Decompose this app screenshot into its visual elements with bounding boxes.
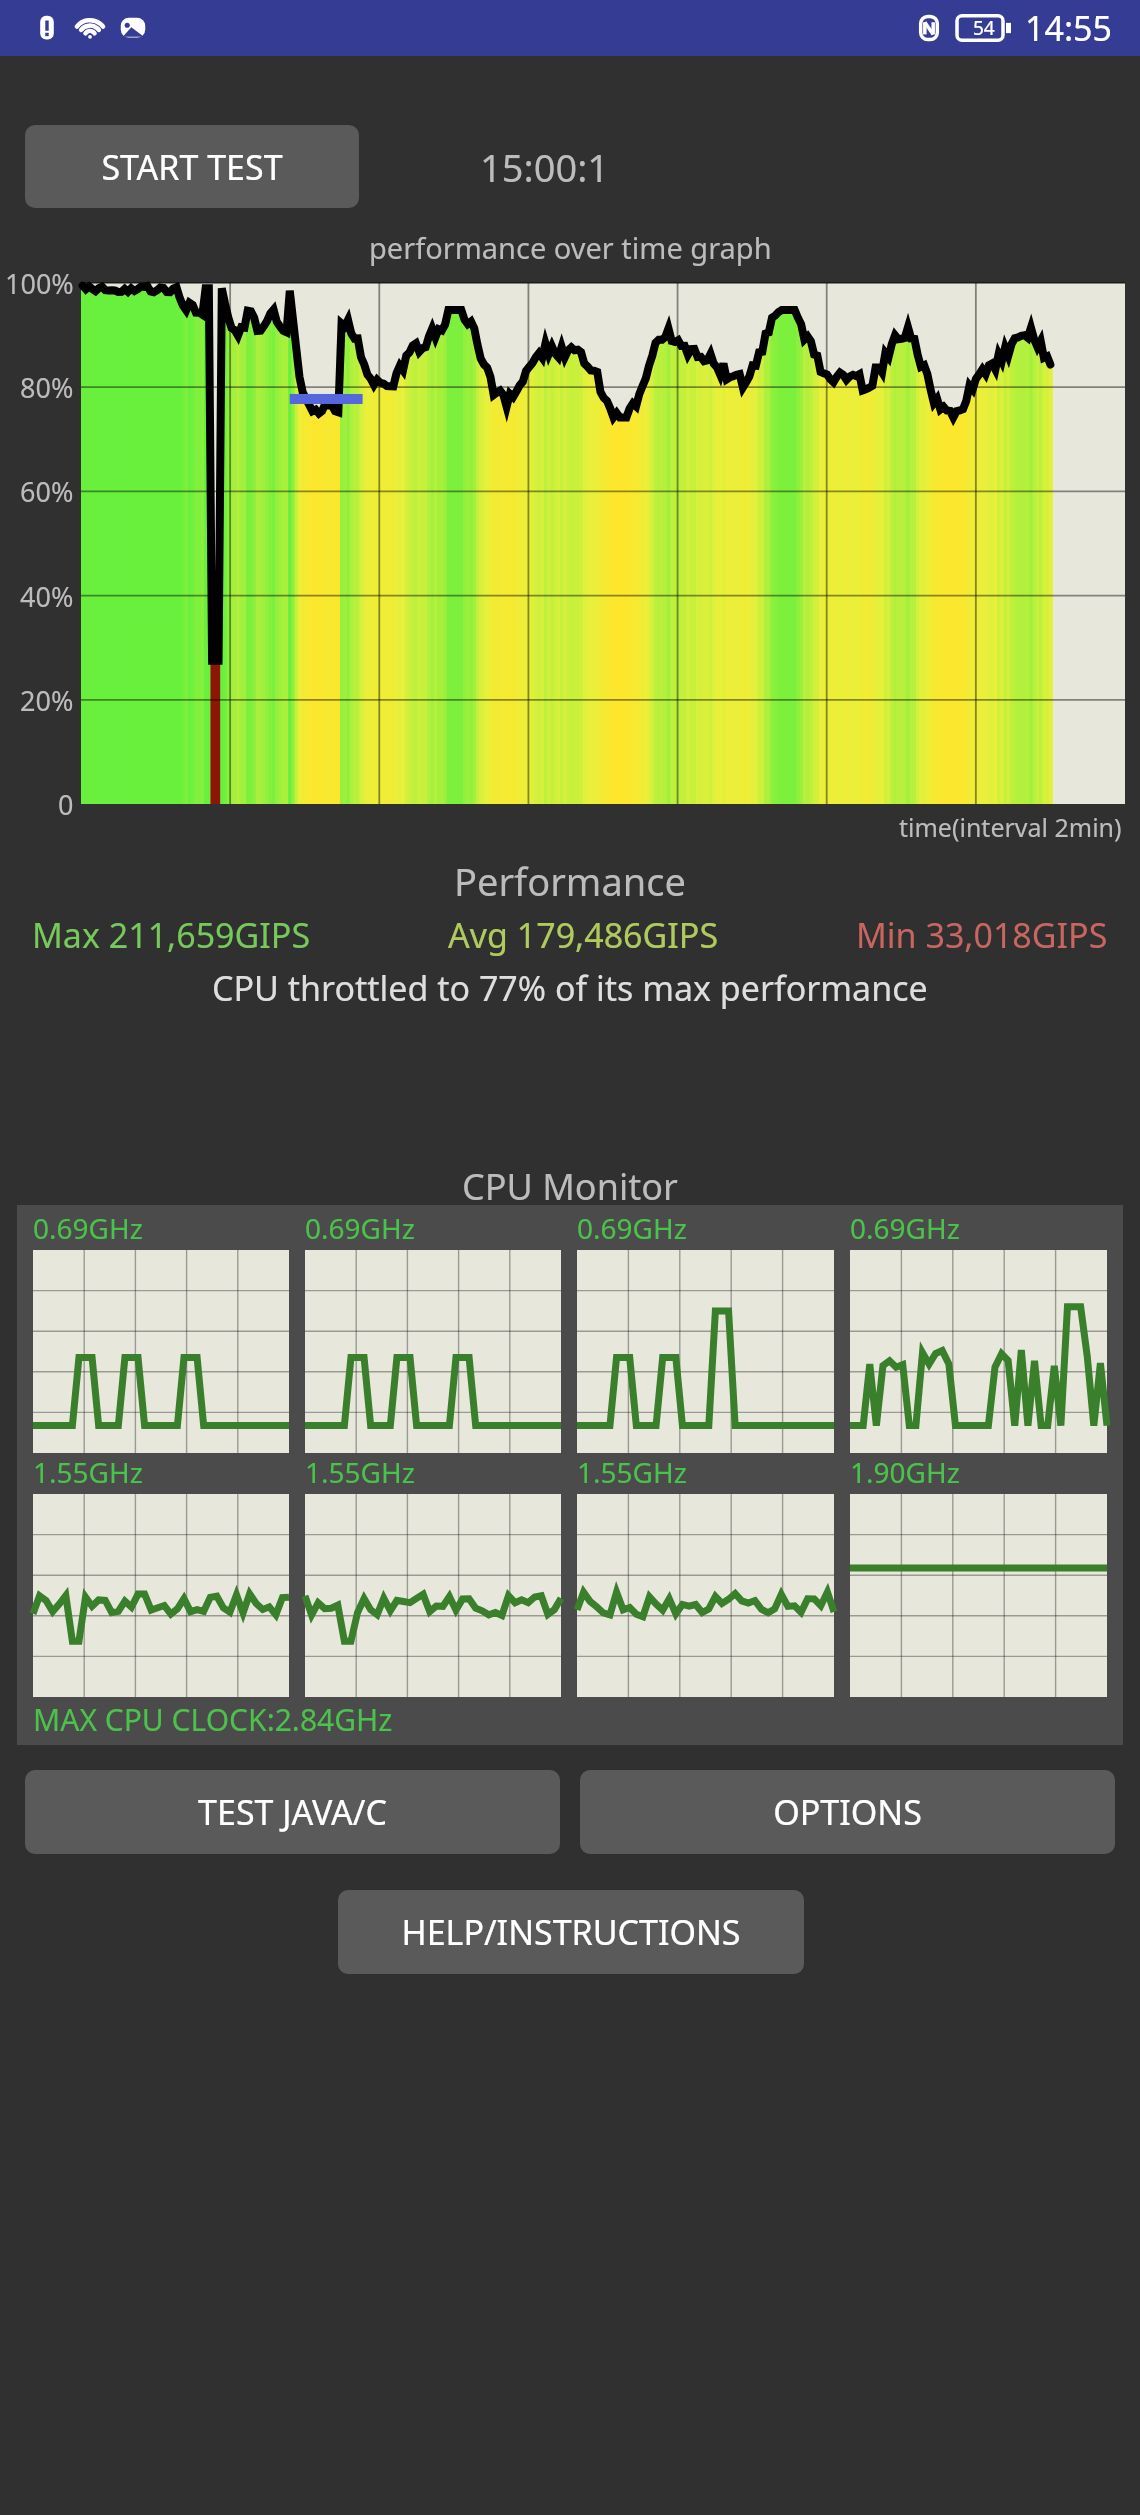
staticText: 1.55GHz bbox=[33, 1453, 143, 1491]
staticText: OPTIONS bbox=[773, 1789, 922, 1835]
staticText: 80% bbox=[20, 369, 74, 406]
staticText: CPU Monitor bbox=[462, 1162, 678, 1211]
staticText: 20% bbox=[20, 682, 74, 719]
staticText: 40% bbox=[20, 578, 74, 615]
staticText: MAX CPU CLOCK:2.84GHz bbox=[33, 1699, 393, 1740]
button[interactable]: OPTIONS bbox=[580, 1770, 1115, 1854]
staticText: 54 bbox=[973, 15, 995, 41]
staticText: 0 bbox=[58, 786, 74, 823]
button[interactable]: TEST JAVA/C bbox=[25, 1770, 560, 1854]
staticText: Min 33,018GIPS bbox=[856, 912, 1108, 958]
staticText: Avg 179,486GIPS bbox=[448, 912, 719, 958]
staticText: CPU throttled to 77% of its max performa… bbox=[212, 965, 928, 1011]
staticText: 0.69GHz bbox=[850, 1209, 960, 1247]
staticText: performance over time graph bbox=[369, 228, 772, 267]
staticText: 15:00:1 bbox=[480, 141, 610, 193]
staticText: 0.69GHz bbox=[305, 1209, 415, 1247]
staticText: 60% bbox=[20, 473, 74, 510]
staticText: TEST JAVA/C bbox=[198, 1789, 387, 1835]
staticText: 0.69GHz bbox=[33, 1209, 143, 1247]
staticText: 1.55GHz bbox=[577, 1453, 687, 1491]
staticText: 14:55 bbox=[1025, 5, 1112, 51]
button[interactable]: START TEST bbox=[25, 125, 359, 208]
staticText: START TEST bbox=[101, 144, 283, 190]
staticText: Max 211,659GIPS bbox=[32, 912, 311, 958]
staticText: 1.55GHz bbox=[305, 1453, 415, 1491]
staticText: 0.69GHz bbox=[577, 1209, 687, 1247]
staticText: time(interval 2min) bbox=[899, 810, 1122, 844]
staticText: 100% bbox=[5, 265, 74, 302]
button[interactable]: HELP/INSTRUCTIONS bbox=[338, 1890, 804, 1974]
staticText: Performance bbox=[454, 855, 686, 907]
staticText: 1.90GHz bbox=[850, 1453, 960, 1491]
staticText: HELP/INSTRUCTIONS bbox=[401, 1909, 741, 1955]
